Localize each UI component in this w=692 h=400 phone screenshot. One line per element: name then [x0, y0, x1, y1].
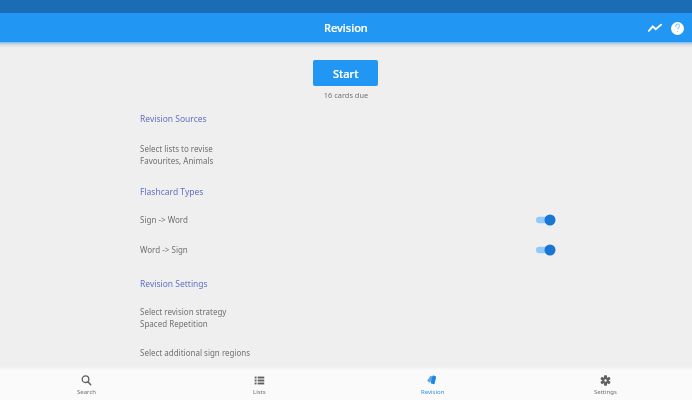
button[interactable]: Help	[666, 17, 688, 39]
staticText: Favourites, Animals	[140, 155, 214, 166]
button[interactable]: Select revision strategy	[0, 302, 692, 328]
staticText: Select additional sign regions	[140, 347, 251, 358]
button[interactable]: Start	[313, 60, 378, 86]
button[interactable]: Select additional sign regions	[0, 343, 692, 358]
staticText: Revision Sources	[140, 113, 207, 125]
staticText: Word -> Sign	[140, 244, 188, 255]
staticText: Sign -> Word	[140, 214, 188, 225]
staticText: 16 cards due	[0, 90, 692, 100]
staticText: Search	[77, 388, 96, 396]
button[interactable]: Sign -> Word	[0, 207, 692, 229]
staticText: Select revision strategy	[140, 306, 227, 317]
staticText: Revision	[324, 20, 368, 35]
staticText: Revision	[421, 388, 445, 396]
button[interactable]: Settings	[519, 370, 692, 400]
button[interactable]: Lists	[173, 370, 346, 400]
staticText: Settings	[594, 388, 617, 396]
button[interactable]: Statistics	[644, 17, 666, 39]
button[interactable]: Search	[0, 370, 173, 400]
staticText: Start	[333, 66, 359, 81]
staticText: Lists	[253, 388, 266, 396]
staticText: Flashcard Types	[140, 186, 204, 198]
staticText: Spaced Repetition	[140, 318, 208, 329]
button[interactable]: Select lists to revise	[0, 139, 692, 165]
staticText: Revision Settings	[140, 278, 208, 290]
button[interactable]: Revision	[346, 370, 519, 400]
button[interactable]: Word -> Sign	[0, 237, 692, 259]
staticText: Select lists to revise	[140, 143, 213, 154]
